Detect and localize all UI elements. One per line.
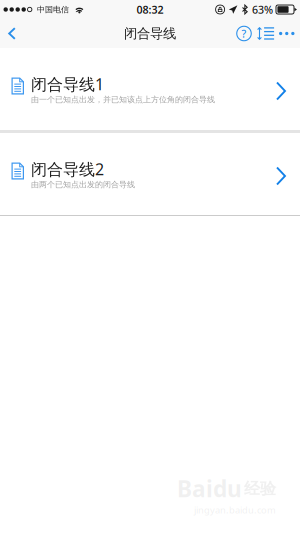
button[interactable]: Back xyxy=(4,19,20,48)
staticText: jingyan.baidu.com xyxy=(194,504,276,516)
button[interactable]: 闭合导线1 xyxy=(0,48,300,130)
staticText: 中国电信 xyxy=(37,5,69,14)
staticText: 由两个已知点出发的闭合导线 xyxy=(31,180,135,189)
button[interactable]: More options xyxy=(277,19,296,48)
staticText: 63% xyxy=(252,2,273,17)
staticText: Baidu xyxy=(177,473,242,504)
staticText: 经验 xyxy=(244,479,276,498)
staticText: 闭合导线 xyxy=(124,25,176,42)
staticText: 08:32 xyxy=(137,2,164,17)
staticText: 由一个已知点出发，并已知该点上方位角的闭合导线 xyxy=(31,95,215,104)
button[interactable]: Help xyxy=(234,19,254,48)
staticText: ? xyxy=(241,26,246,41)
button[interactable]: 闭合导线2 xyxy=(0,133,300,215)
staticText: 闭合导线2 xyxy=(31,158,104,180)
button[interactable]: Sort order xyxy=(254,19,277,48)
staticText: 闭合导线1 xyxy=(31,73,104,95)
